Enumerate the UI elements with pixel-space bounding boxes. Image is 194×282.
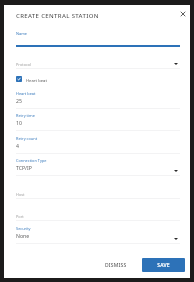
button[interactable]: Name xyxy=(16,24,180,47)
staticText: Retry time xyxy=(16,113,35,118)
staticText: Security xyxy=(16,226,31,231)
staticText: DISMISS xyxy=(105,262,127,269)
staticText: 10 xyxy=(16,119,22,126)
staticText: Name xyxy=(16,31,27,36)
staticText: CREATE CENTRAL STATION xyxy=(16,12,99,20)
button[interactable]: Retry count xyxy=(16,131,180,154)
staticText: 4 xyxy=(16,142,19,149)
button[interactable]: Close xyxy=(177,8,188,19)
staticText: None xyxy=(16,232,30,239)
staticText: TCP/IP xyxy=(16,164,32,171)
staticText: Port xyxy=(16,214,24,219)
button[interactable]: Port xyxy=(16,198,180,221)
button[interactable]: Host xyxy=(16,176,180,199)
staticText: Heart beat xyxy=(16,91,36,96)
button[interactable]: Connection Type xyxy=(16,153,180,176)
staticText: Retry count xyxy=(16,136,38,141)
button[interactable]: Heart beat xyxy=(16,69,180,86)
button[interactable]: Retry time xyxy=(16,108,180,131)
staticText: SAVE xyxy=(157,262,170,269)
button[interactable]: SAVE xyxy=(142,258,185,272)
staticText: Host xyxy=(16,192,25,197)
button[interactable]: Protocol xyxy=(16,46,180,69)
staticText: Connection Type xyxy=(16,158,47,163)
staticText: Heart beat xyxy=(26,78,47,84)
staticText: Protocol xyxy=(16,62,32,67)
button[interactable]: DISMISS xyxy=(99,258,133,272)
button[interactable]: Security xyxy=(16,221,180,244)
staticText: 25 xyxy=(16,97,22,104)
button[interactable]: Heart beat xyxy=(16,86,180,109)
